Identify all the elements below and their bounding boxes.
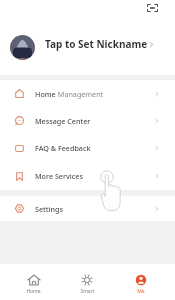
button[interactable]: Message Center: [0, 107, 175, 134]
button[interactable]: Home: [0, 80, 175, 107]
button[interactable]: Scan code: [144, 0, 160, 16]
button[interactable]: Tap to Set Nickname: [0, 27, 175, 65]
staticText: FAQ & Feedback: [35, 143, 91, 153]
button[interactable]: More Services: [0, 162, 175, 190]
staticText: Home: [26, 288, 41, 295]
staticText: Tap to Set Nickname: [45, 37, 148, 51]
staticText: More Services: [35, 171, 83, 181]
button[interactable]: Home: [7, 264, 60, 300]
button[interactable]: Smart: [60, 264, 114, 300]
staticText: Me: [137, 288, 145, 295]
staticText: Message Center: [35, 116, 91, 126]
staticText: Management: [56, 89, 104, 99]
staticText: Home: [35, 89, 56, 99]
button[interactable]: FAQ & Feedback: [0, 134, 175, 162]
button[interactable]: Me: [114, 264, 168, 300]
staticText: Settings: [35, 204, 63, 214]
staticText: Smart: [80, 288, 95, 295]
button[interactable]: Settings: [0, 196, 175, 221]
